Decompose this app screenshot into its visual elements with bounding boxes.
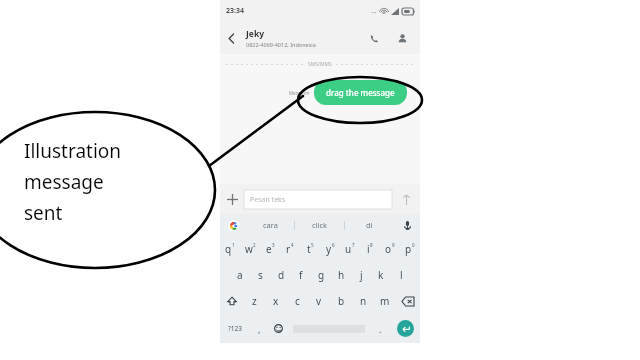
button[interactable]: Back [220, 27, 242, 49]
staticText: j [360, 268, 363, 282]
button[interactable]: c [286, 288, 308, 314]
staticText: 3 [272, 242, 275, 248]
staticText: sent [24, 200, 63, 226]
staticText: q [225, 242, 232, 256]
staticText: Mengirim [289, 90, 310, 96]
button[interactable]: Backspace [396, 288, 420, 314]
button[interactable]: di [345, 214, 394, 236]
button[interactable]: w [240, 236, 260, 262]
staticText: d [278, 268, 285, 282]
staticText: r [286, 242, 291, 256]
staticText: m [380, 294, 390, 308]
staticText: ?123 [228, 324, 242, 333]
staticText: . [379, 323, 382, 335]
staticText: drag the message [326, 87, 395, 98]
button[interactable]: click [295, 214, 344, 236]
staticText: Pesan teks [250, 195, 286, 205]
staticText: e [266, 242, 272, 256]
button[interactable]: k [371, 262, 391, 288]
staticText: v [316, 294, 322, 308]
button[interactable]: t [300, 236, 320, 262]
staticText: w [245, 242, 253, 256]
button[interactable]: Attach [220, 187, 244, 211]
button[interactable]: i [360, 236, 380, 262]
staticText: u [345, 242, 352, 256]
staticText: 4 [291, 242, 294, 248]
button[interactable]: Space [288, 314, 370, 343]
button[interactable]: Enter [390, 314, 420, 343]
staticText: y [326, 242, 332, 256]
staticText: 2 [253, 242, 256, 248]
staticText: click [312, 220, 328, 230]
staticText: g [318, 268, 325, 282]
staticText: 8 [370, 242, 373, 248]
staticText: 23:34 [226, 6, 244, 16]
button[interactable]: s [250, 262, 271, 288]
button[interactable]: h [331, 262, 351, 288]
button[interactable]: x [265, 288, 286, 314]
button[interactable]: l [391, 262, 411, 288]
button[interactable]: b [330, 288, 352, 314]
button[interactable]: Shift [220, 288, 244, 314]
button[interactable]: j [351, 262, 371, 288]
button[interactable]: o [380, 236, 400, 262]
staticText: t [307, 242, 311, 256]
staticText: , [258, 323, 261, 335]
button[interactable]: p [400, 236, 420, 262]
button[interactable]: n [352, 288, 374, 314]
staticText: SMS/MMS [308, 61, 332, 68]
staticText: 1 [232, 242, 235, 248]
button[interactable]: u [340, 236, 360, 262]
staticText: 0822-4069-4012, Indonesia [246, 41, 316, 48]
button[interactable]: y [320, 236, 340, 262]
button[interactable]: Send [392, 185, 420, 213]
staticText: b [338, 294, 345, 308]
button[interactable]: . [370, 314, 390, 343]
staticText: a [237, 268, 243, 282]
button[interactable]: Contact details [390, 26, 414, 50]
staticText: ... [371, 6, 377, 16]
button[interactable]: z [244, 288, 265, 314]
button[interactable]: , [250, 314, 268, 343]
staticText: o [385, 242, 392, 256]
button[interactable]: Emoji [268, 314, 288, 343]
staticText: cara [263, 220, 278, 230]
staticText: f [299, 268, 303, 282]
staticText: 6 [332, 242, 335, 248]
staticText: di [366, 220, 373, 230]
staticText: i [367, 242, 370, 256]
staticText: 7 [352, 242, 355, 248]
staticText: 5 [311, 242, 314, 248]
staticText: c [295, 294, 300, 308]
button[interactable]: m [374, 288, 396, 314]
staticText: z [252, 294, 257, 308]
button[interactable]: r [280, 236, 300, 262]
button[interactable]: drag the message [314, 80, 407, 105]
button[interactable]: Call [362, 26, 386, 50]
staticText: Jeky [246, 28, 265, 40]
button[interactable]: g [311, 262, 331, 288]
button[interactable]: cara [246, 214, 294, 236]
button[interactable]: Pesan teks [244, 190, 392, 209]
button[interactable]: e [260, 236, 280, 262]
staticText: k [378, 268, 384, 282]
staticText: Illustration [24, 138, 122, 164]
button[interactable]: v [308, 288, 330, 314]
staticText: message [24, 169, 104, 195]
staticText: l [400, 268, 403, 282]
staticText: 0 [412, 242, 415, 248]
button[interactable]: ?123 [220, 314, 250, 343]
staticText: s [258, 268, 263, 282]
button[interactable]: f [291, 262, 311, 288]
staticText: n [360, 294, 367, 308]
button[interactable]: Voice input [394, 214, 420, 236]
button[interactable]: a [229, 262, 250, 288]
staticText: h [338, 268, 345, 282]
staticText: p [405, 242, 412, 256]
button[interactable]: q [220, 236, 240, 262]
staticText: x [273, 294, 279, 308]
button[interactable]: d [271, 262, 291, 288]
button[interactable]: Google [220, 214, 246, 236]
staticText: 9 [392, 242, 395, 248]
